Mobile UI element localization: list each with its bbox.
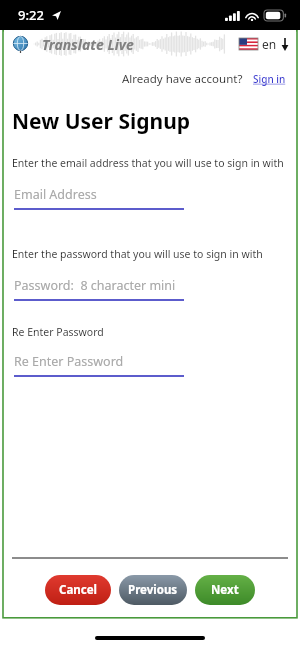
staticText: Password: 8 character mini: [14, 277, 176, 294]
button[interactable]: Password: 8 character mini: [14, 277, 184, 301]
button[interactable]: Email Address: [14, 186, 184, 210]
staticText: Next: [211, 582, 239, 598]
staticText: Cancel: [59, 582, 97, 598]
staticText: Translate Live: [42, 35, 134, 54]
button[interactable]: Select language English: [239, 36, 290, 52]
staticText: 9:22: [18, 6, 44, 24]
staticText: en: [262, 36, 277, 52]
staticText: Re Enter Password: [12, 325, 104, 339]
staticText: Enter the password that you will use to …: [12, 247, 263, 261]
staticText: Enter the email address that you will us…: [12, 156, 284, 170]
button[interactable]: Cancel: [45, 575, 111, 605]
button[interactable]: Previous: [119, 575, 187, 605]
button[interactable]: Re Enter Password: [14, 353, 184, 377]
button[interactable]: Sign in: [251, 70, 288, 88]
staticText: Previous: [128, 582, 178, 598]
staticText: Sign in: [253, 72, 286, 86]
button[interactable]: Next: [195, 575, 255, 605]
staticText: Re Enter Password: [14, 353, 124, 370]
staticText: Already have account?: [122, 71, 243, 87]
button[interactable]: Language globe: [12, 36, 29, 53]
staticText: New User Signup: [12, 107, 191, 136]
staticText: Email Address: [14, 186, 97, 203]
